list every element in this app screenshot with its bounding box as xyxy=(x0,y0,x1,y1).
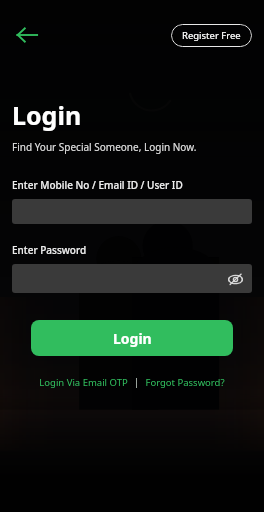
button[interactable]: Forgot Password? xyxy=(143,374,227,391)
button[interactable]: Login xyxy=(31,320,233,356)
staticText: Login xyxy=(12,98,82,132)
button[interactable]: Back xyxy=(10,18,44,52)
staticText: Find Your Special Someone, Login Now. xyxy=(12,140,197,154)
staticText: Login Via Email OTP xyxy=(39,376,128,389)
staticText: Login xyxy=(113,329,152,348)
staticText: Enter Mobile No / Email ID / User ID xyxy=(12,178,183,192)
button[interactable]: Login Via Email OTP xyxy=(37,374,130,391)
button[interactable]: Enter Password xyxy=(12,264,252,293)
staticText: Forgot Password? xyxy=(145,376,225,389)
button[interactable]: Register Free xyxy=(171,24,252,47)
staticText: Enter Password xyxy=(12,243,87,257)
button[interactable]: Show password xyxy=(222,266,248,292)
staticText: Register Free xyxy=(182,29,241,42)
